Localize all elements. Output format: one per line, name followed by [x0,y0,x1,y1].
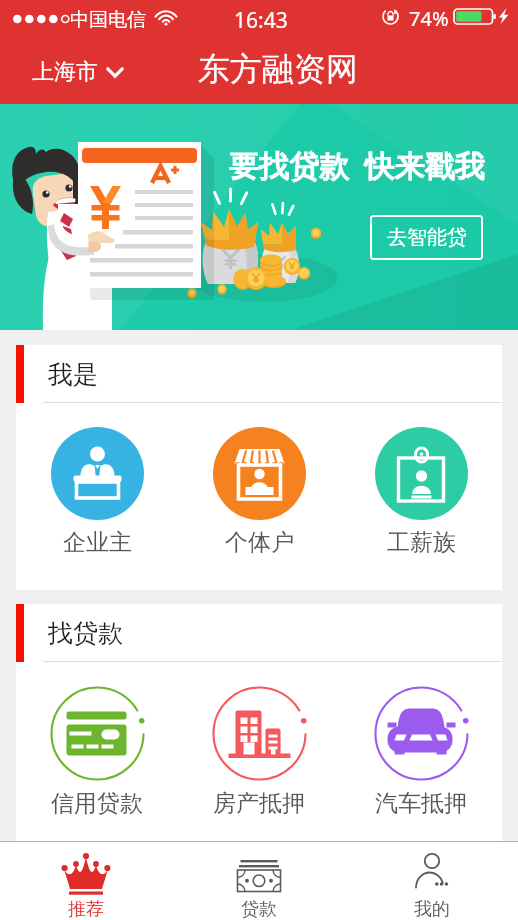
button[interactable]: Loans [172,842,345,920]
staticText: 工薪族 [387,528,456,557]
staticText: 我的 [414,898,450,920]
staticText: 74% [409,5,449,32]
staticText: 推荐 [68,898,104,920]
button[interactable]: 工薪族 [340,403,502,557]
button[interactable]: 房产抵押 [178,662,340,818]
staticText: 我是 [48,359,98,390]
staticText: 汽车抵押 [375,789,467,818]
staticText: 房产抵押 [213,789,305,818]
staticText: 16:43 [234,6,288,35]
button[interactable]: 去智能贷 [370,215,483,260]
staticText: 个体户 [225,528,294,557]
staticText: 找贷款 [48,618,123,649]
button[interactable]: 企业主 [16,403,178,557]
button[interactable]: 信用贷款 [16,662,178,818]
button[interactable]: 要找贷款 快来戳我 [0,104,518,330]
staticText: 企业主 [63,528,132,557]
button[interactable]: Recommended [0,842,172,920]
staticText: 信用贷款 [51,789,143,818]
button[interactable]: 汽车抵押 [340,662,502,818]
staticText: 中国电信 [70,8,146,32]
button[interactable]: 上海市 [28,50,128,94]
staticText: 去智能贷 [387,225,467,250]
staticText: 上海市 [32,58,98,86]
button[interactable]: 个体户 [178,403,340,557]
staticText: 要找贷款 快来戳我 [229,145,485,186]
staticText: 东方融资网 [198,49,358,89]
button[interactable]: Profile [345,842,518,920]
staticText: 贷款 [241,898,277,920]
